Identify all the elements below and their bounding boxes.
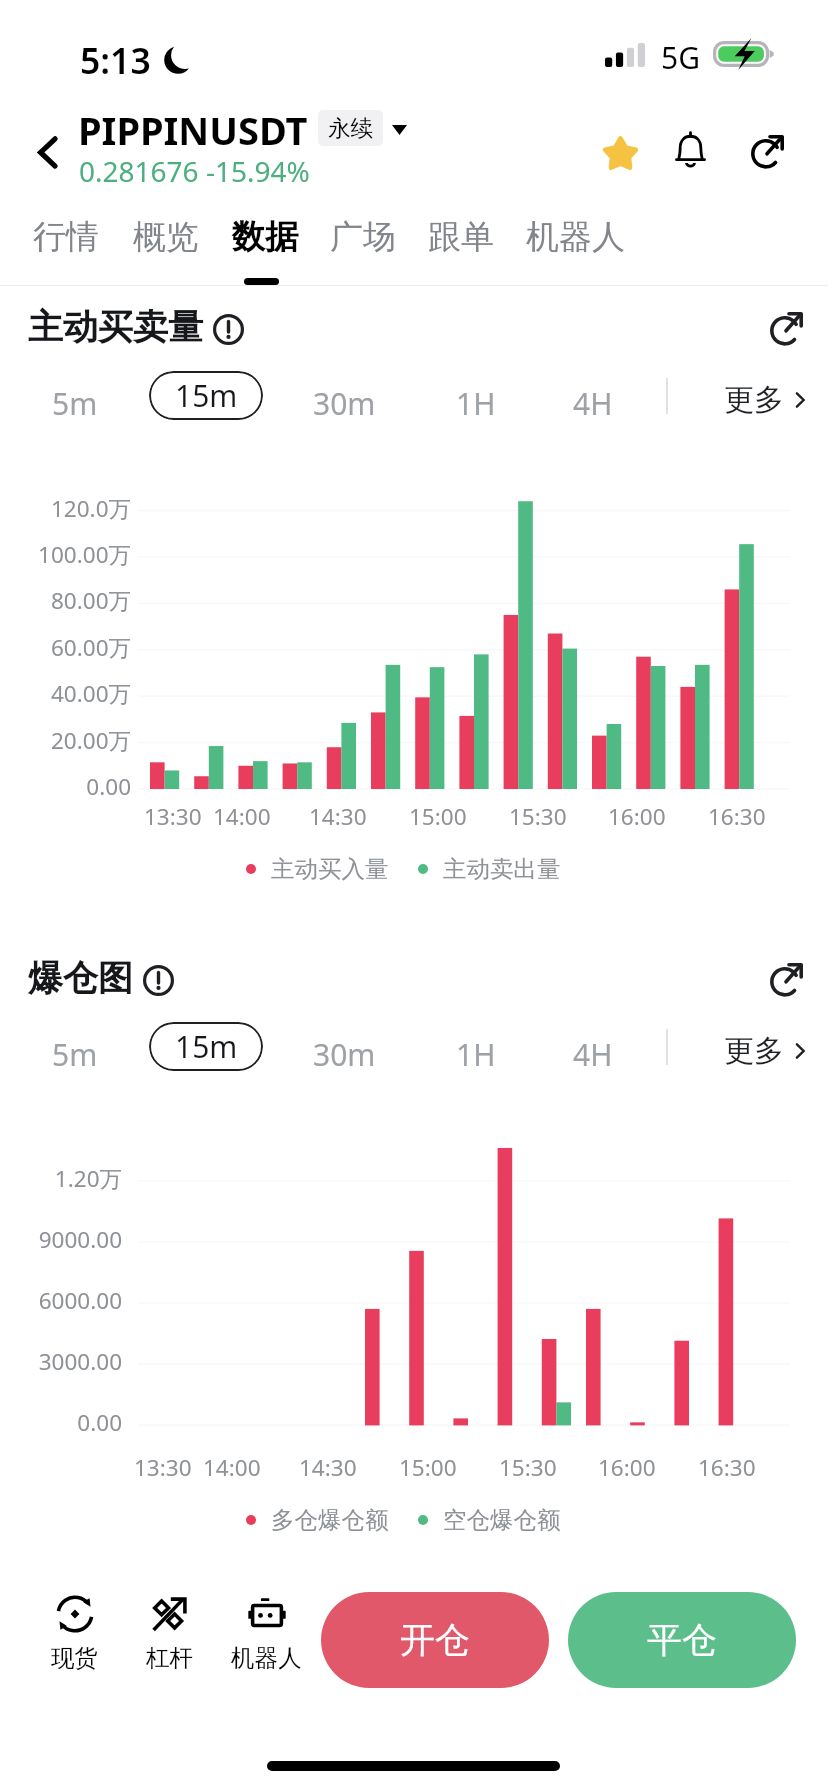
staticText: 概览 — [133, 216, 199, 258]
staticText: 4H — [573, 383, 613, 424]
button[interactable]: 1H — [432, 1016, 520, 1093]
staticText: 14:00 — [203, 1452, 261, 1483]
button[interactable]: Share — [739, 121, 797, 179]
staticText: 机器人 — [231, 1643, 302, 1673]
button[interactable]: 30m — [289, 1016, 400, 1093]
staticText: 机器人 — [526, 216, 625, 258]
button[interactable]: 机器人 — [229, 1593, 304, 1673]
staticText: 跟单 — [428, 216, 494, 258]
staticText: 1H — [456, 1034, 496, 1075]
button[interactable]: 15m — [149, 1022, 263, 1071]
staticText: 13:30 — [144, 801, 202, 832]
staticText: 1H — [456, 383, 496, 424]
staticText: 16:00 — [608, 801, 666, 832]
staticText: 3000.00 — [0, 1346, 122, 1377]
button[interactable]: Open chart full screen — [764, 305, 808, 349]
staticText: 0.281676 -15.94% — [79, 152, 310, 190]
staticText: 广场 — [330, 216, 396, 258]
staticText: 主动卖出量 — [443, 854, 561, 884]
staticText: 16:30 — [698, 1452, 756, 1483]
staticText: 5m — [52, 1034, 98, 1075]
staticText: 空仓爆仓额 — [443, 1505, 561, 1535]
button[interactable]: 1H — [432, 365, 520, 442]
staticText: 数据 — [232, 216, 298, 258]
staticText: 永续 — [328, 114, 373, 142]
staticText: 5G — [661, 37, 700, 78]
staticText: 100.00万 — [0, 539, 131, 570]
staticText: 爆仓图 — [28, 956, 133, 1000]
button[interactable]: 广场 — [316, 200, 410, 274]
staticText: 14:30 — [299, 1452, 357, 1483]
staticText: 40.00万 — [0, 678, 131, 709]
staticText: 杠杆 — [146, 1643, 193, 1673]
staticText: 16:30 — [708, 801, 766, 832]
button[interactable]: 15m — [149, 371, 263, 420]
button[interactable]: Back — [20, 122, 78, 180]
button[interactable]: 数据 — [218, 200, 312, 274]
button[interactable]: 杠杆 — [144, 1593, 195, 1673]
staticText: 13:30 — [134, 1452, 192, 1483]
staticText: 多仓爆仓额 — [271, 1505, 389, 1535]
staticText: 15:00 — [399, 1452, 457, 1483]
staticText: 20.00万 — [0, 725, 131, 756]
staticText: 5m — [52, 383, 98, 424]
staticText: 开仓 — [400, 1618, 470, 1662]
button[interactable]: 跟单 — [414, 200, 508, 274]
staticText: 主动买入量 — [271, 854, 389, 884]
button[interactable]: 4H — [549, 365, 637, 442]
staticText: 15:00 — [409, 801, 467, 832]
button[interactable]: 5m — [28, 1016, 122, 1093]
button[interactable]: 5m — [28, 365, 122, 442]
staticText: 4H — [573, 1034, 613, 1075]
staticText: 15:30 — [509, 801, 567, 832]
button[interactable]: 开仓 — [321, 1592, 549, 1688]
staticText: 9000.00 — [0, 1224, 122, 1255]
button[interactable]: 行情 — [19, 200, 113, 274]
staticText: 60.00万 — [0, 632, 131, 663]
staticText: 120.0万 — [0, 493, 131, 524]
staticText: 现货 — [51, 1643, 98, 1673]
button[interactable]: Favorite — [590, 122, 648, 180]
staticText: 15:30 — [499, 1452, 557, 1483]
staticText: 30m — [313, 1034, 376, 1075]
staticText: PIPPINUSDT — [78, 104, 308, 156]
staticText: 更多 — [724, 381, 784, 419]
button[interactable]: 现货 — [49, 1593, 100, 1673]
button[interactable]: 机器人 — [512, 200, 639, 274]
staticText: 平仓 — [647, 1618, 717, 1662]
button[interactable]: Alerts — [662, 121, 720, 179]
button[interactable]: 永续 — [318, 110, 383, 146]
button[interactable]: 平仓 — [568, 1592, 796, 1688]
staticText: 行情 — [33, 216, 99, 258]
staticText: 6000.00 — [0, 1285, 122, 1316]
staticText: 0.00 — [0, 1407, 122, 1438]
staticText: 更多 — [724, 1032, 784, 1070]
staticText: 30m — [313, 383, 376, 424]
staticText: 14:00 — [213, 801, 271, 832]
staticText: 80.00万 — [0, 585, 131, 616]
staticText: 15m — [175, 375, 238, 416]
staticText: 15m — [175, 1026, 238, 1067]
staticText: 1.20万 — [0, 1163, 122, 1194]
button[interactable]: 更多 — [708, 1016, 821, 1086]
button[interactable]: 概览 — [119, 200, 213, 274]
button[interactable]: 30m — [289, 365, 400, 442]
staticText: 14:30 — [309, 801, 367, 832]
staticText: 主动买卖量 — [28, 305, 203, 349]
staticText: 0.00 — [0, 771, 131, 802]
staticText: 5:13 — [80, 36, 151, 84]
button[interactable]: 4H — [549, 1016, 637, 1093]
button[interactable]: 更多 — [708, 365, 821, 435]
button[interactable]: Open chart full screen — [764, 956, 808, 1000]
staticText: 16:00 — [598, 1452, 656, 1483]
